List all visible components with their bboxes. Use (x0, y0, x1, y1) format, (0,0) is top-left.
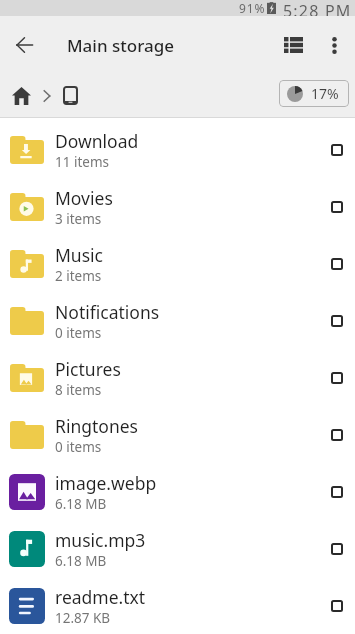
button[interactable]: 17% (279, 80, 349, 107)
button[interactable]: Select Pictures (324, 349, 349, 406)
staticText: 0 items (55, 324, 102, 342)
button[interactable]: Music (0, 235, 355, 292)
staticText: Download (55, 129, 139, 153)
staticText: 17% (311, 84, 339, 103)
staticText: 0 items (55, 438, 102, 456)
button[interactable]: Notifications (0, 292, 355, 349)
staticText: 5:28 PM (283, 0, 352, 16)
button[interactable]: Back (0, 16, 48, 74)
staticText: 12.87 KB (55, 609, 111, 627)
button[interactable]: Select image.webp (324, 463, 349, 520)
button[interactable]: Device storage (54, 74, 86, 117)
staticText: 2 items (55, 267, 102, 285)
staticText: 11 items (55, 153, 110, 171)
staticText: music.mp3 (55, 528, 146, 552)
button[interactable]: Select Download (324, 121, 349, 178)
staticText: readme.txt (55, 585, 146, 609)
button[interactable]: Home (2, 74, 40, 117)
staticText: 91% (239, 0, 266, 16)
button[interactable]: Ringtones (0, 406, 355, 463)
button[interactable]: Download (0, 121, 355, 178)
button[interactable]: Select Music (324, 235, 349, 292)
staticText: Ringtones (55, 414, 138, 438)
staticText: 8 items (55, 381, 102, 399)
button[interactable]: Select Ringtones (324, 406, 349, 463)
staticText: Notifications (55, 300, 160, 324)
button[interactable]: Select Movies (324, 178, 349, 235)
staticText: Main storage (67, 34, 175, 57)
staticText: 6.18 MB (55, 495, 107, 513)
staticText: image.webp (55, 471, 157, 495)
button[interactable]: Pictures (0, 349, 355, 406)
staticText: 3 items (55, 210, 102, 228)
staticText: Movies (55, 186, 113, 210)
button[interactable]: Select Notifications (324, 292, 349, 349)
button[interactable]: Change view (273, 16, 313, 74)
button[interactable]: Select music.mp3 (324, 520, 349, 577)
staticText: Music (55, 243, 103, 267)
button[interactable]: Movies (0, 178, 355, 235)
staticText: 6.18 MB (55, 552, 107, 570)
button[interactable]: readme.txt (0, 577, 355, 634)
staticText: Pictures (55, 357, 121, 381)
button[interactable]: Select readme.txt (324, 577, 349, 634)
button[interactable]: music.mp3 (0, 520, 355, 577)
button[interactable]: image.webp (0, 463, 355, 520)
button[interactable]: More options (313, 16, 355, 74)
